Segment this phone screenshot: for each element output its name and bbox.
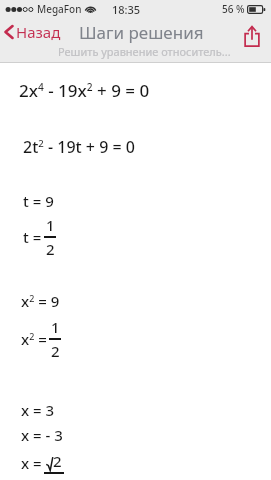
staticText: Решить уравнение относитель... — [58, 44, 231, 59]
staticText: t = — [23, 227, 42, 247]
staticText: MegaFon — [37, 2, 82, 16]
button[interactable]: Назад — [0, 19, 67, 47]
staticText: 1 — [51, 317, 60, 337]
button[interactable]: Поделиться — [235, 19, 269, 53]
staticText: t = 9 — [23, 191, 54, 211]
staticText: x = - 3 — [21, 425, 63, 445]
staticText: 2 — [53, 451, 62, 471]
staticText: 2x4 - 19x2 + 9 = 0 — [19, 79, 150, 102]
staticText: 1 — [46, 215, 55, 235]
staticText: 18:35 — [112, 2, 141, 17]
staticText: 2 — [51, 341, 60, 361]
staticText: Назад — [16, 22, 61, 42]
staticText: 56 % — [222, 2, 245, 16]
staticText: x2 = — [21, 329, 47, 349]
staticText: Шаги решения — [79, 21, 204, 44]
staticText: 2 — [46, 239, 55, 259]
staticText: x = — [21, 453, 42, 473]
staticText: x = 3 — [21, 400, 55, 420]
staticText: x2 = 9 — [21, 291, 60, 311]
staticText: 2t2 - 19t + 9 = 0 — [23, 136, 135, 158]
